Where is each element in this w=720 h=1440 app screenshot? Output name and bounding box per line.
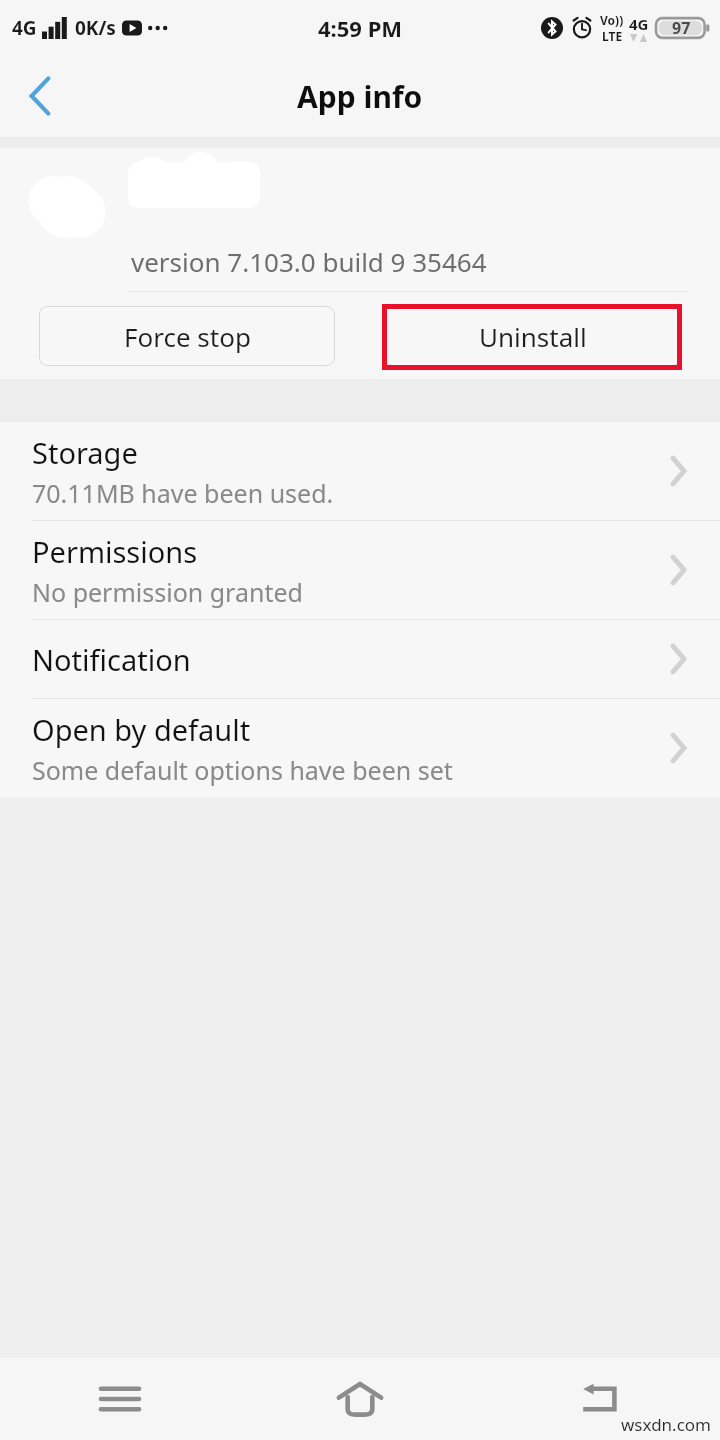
staticText: version 7.103.0 build 9 35464 bbox=[131, 244, 487, 279]
button[interactable]: Back bbox=[540, 1358, 660, 1440]
staticText: Storage bbox=[32, 433, 138, 472]
staticText: Force stop bbox=[124, 319, 251, 354]
button[interactable]: Permissions bbox=[0, 521, 720, 620]
button[interactable]: Force stop bbox=[39, 306, 335, 366]
staticText: 4G bbox=[12, 15, 37, 41]
staticText: Notification bbox=[32, 640, 191, 679]
staticText: wsxdn.com bbox=[621, 1413, 712, 1436]
staticText: 70.11MB have been used. bbox=[32, 476, 334, 510]
staticText: Some default options have been set bbox=[32, 753, 453, 787]
button[interactable]: Open by default bbox=[0, 699, 720, 797]
staticText: Open by default bbox=[32, 710, 251, 749]
staticText: 97 bbox=[672, 17, 691, 39]
staticText: No permission granted bbox=[32, 575, 303, 609]
staticText: 0K/s bbox=[75, 15, 116, 41]
staticText: Permissions bbox=[32, 532, 198, 571]
button[interactable]: Recent apps bbox=[60, 1358, 180, 1440]
button[interactable]: Notification bbox=[0, 620, 720, 699]
button[interactable]: Back bbox=[0, 55, 80, 137]
staticText: 4:59 PM bbox=[318, 13, 403, 43]
staticText: LTE bbox=[602, 28, 623, 44]
button[interactable]: Storage bbox=[0, 422, 720, 521]
button[interactable]: Home bbox=[300, 1358, 420, 1440]
staticText: 4G bbox=[629, 14, 649, 34]
staticText: Uninstall bbox=[479, 319, 587, 354]
staticText: App info bbox=[297, 76, 423, 117]
staticText: Vo)) bbox=[600, 12, 624, 28]
button[interactable]: Uninstall bbox=[385, 306, 681, 366]
